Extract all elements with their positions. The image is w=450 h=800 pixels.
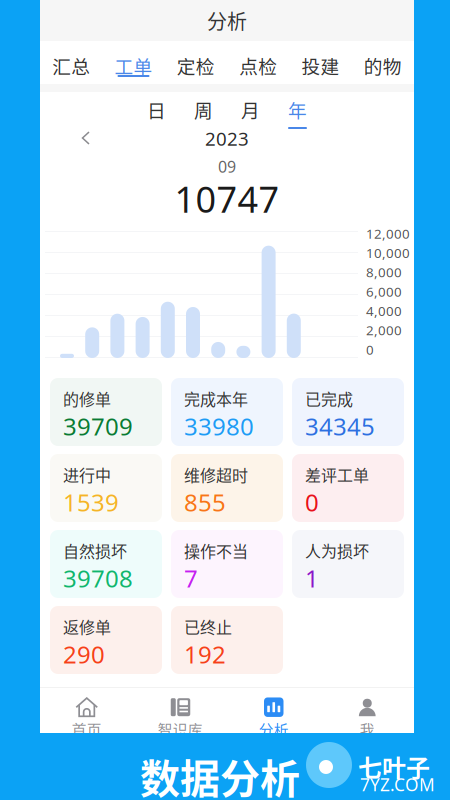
staticText: 完成本年 (184, 387, 248, 410)
staticText: 12,000 (366, 225, 410, 242)
button[interactable]: 的修单 (50, 378, 162, 446)
button[interactable]: 年 (289, 96, 305, 129)
staticText: 操作不当 (184, 539, 248, 562)
staticText: 的修单 (63, 387, 111, 410)
staticText: 日 (147, 96, 166, 123)
button[interactable]: 汇总 (40, 41, 102, 84)
staticText: 290 (63, 638, 105, 670)
staticText: 周 (194, 96, 213, 123)
button[interactable]: 点检 (227, 41, 289, 84)
staticText: 10747 (174, 175, 279, 223)
button[interactable]: 已终止 (171, 606, 283, 674)
button[interactable]: 工单 (102, 41, 165, 84)
staticText: 人为损坏 (305, 539, 369, 562)
staticText: 39708 (63, 562, 133, 594)
staticText: 1 (305, 562, 319, 594)
staticText: 192 (184, 638, 226, 670)
staticText: 的物 (364, 52, 402, 79)
button[interactable]: 进行中 (50, 454, 162, 522)
staticText: 进行中 (63, 463, 111, 486)
button[interactable]: 月 (242, 96, 258, 129)
staticText: 分析 (207, 6, 247, 35)
button[interactable]: 定检 (165, 41, 227, 84)
staticText: 1539 (63, 486, 119, 518)
staticText: 点检 (239, 52, 277, 79)
staticText: 39709 (63, 410, 133, 442)
button[interactable]: 已完成 (292, 378, 404, 446)
button[interactable]: 的物 (352, 41, 414, 84)
staticText: 7YZ.COM (360, 773, 435, 796)
staticText: 智识库 (158, 719, 203, 740)
button[interactable]: 返修单 (50, 606, 162, 674)
button[interactable]: 周 (195, 96, 211, 129)
staticText: 2,000 (366, 321, 402, 339)
staticText: 投建 (301, 52, 339, 79)
staticText: 数据分析 (140, 747, 300, 800)
staticText: 定检 (177, 52, 215, 79)
staticText: 09 (218, 156, 236, 177)
button[interactable]: 维修超时 (171, 454, 283, 522)
staticText: 自然损坏 (63, 539, 127, 562)
staticText: 6,000 (366, 283, 402, 300)
staticText: 差评工单 (305, 463, 369, 486)
staticText: 7 (184, 562, 198, 594)
staticText: 8,000 (366, 263, 402, 281)
button[interactable]: 投建 (289, 41, 352, 84)
button[interactable]: 智识库 (133, 688, 227, 733)
staticText: 七叶子 (358, 749, 430, 784)
button[interactable]: 操作不当 (171, 530, 283, 598)
staticText: 维修超时 (184, 463, 248, 486)
button[interactable]: 差评工单 (292, 454, 404, 522)
staticText: 10,000 (366, 244, 410, 262)
staticText: 分析 (259, 719, 289, 740)
staticText: 33980 (184, 410, 254, 442)
staticText: 0 (305, 486, 319, 518)
button[interactable]: 上一年 (80, 130, 106, 152)
staticText: 已终止 (184, 615, 232, 638)
staticText: 返修单 (63, 615, 111, 638)
staticText: 2023 (205, 126, 249, 151)
staticText: 汇总 (52, 52, 90, 79)
staticText: 月 (241, 96, 260, 123)
staticText: 首页 (72, 719, 102, 740)
button[interactable]: 自然损坏 (50, 530, 162, 598)
staticText: 我 (360, 719, 375, 740)
button[interactable]: 首页 (40, 688, 133, 733)
button[interactable]: 分析 (227, 688, 320, 733)
staticText: 34345 (305, 410, 375, 442)
staticText: 855 (184, 486, 226, 518)
button[interactable]: 完成本年 (171, 378, 283, 446)
staticText: 年 (288, 96, 307, 123)
staticText: 工单 (114, 52, 152, 79)
staticText: 0 (366, 341, 374, 358)
staticText: 4,000 (366, 302, 402, 320)
button[interactable]: 人为损坏 (292, 530, 404, 598)
button[interactable]: 我 (320, 688, 414, 733)
button[interactable]: 日 (148, 96, 164, 129)
staticText: 已完成 (305, 387, 353, 410)
